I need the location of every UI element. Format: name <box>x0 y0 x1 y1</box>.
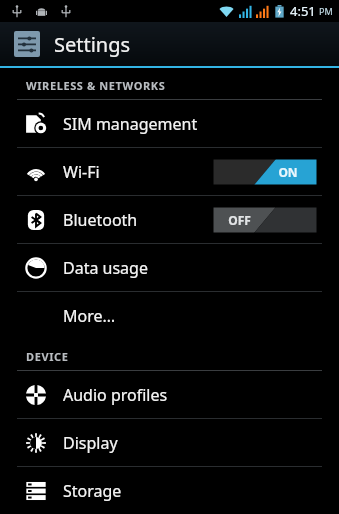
staticText: Wi-Fi <box>63 161 100 183</box>
staticText: Bluetooth <box>63 209 138 231</box>
staticText: More… <box>63 305 116 327</box>
button[interactable]: Display <box>0 419 339 466</box>
button[interactable]: Wi-Fi <box>0 148 339 195</box>
staticText: ON <box>278 164 298 180</box>
button[interactable]: Settings <box>0 22 339 66</box>
button[interactable]: SIM management <box>0 100 339 147</box>
staticText: Audio profiles <box>63 384 168 406</box>
staticText: 4:51 <box>290 2 316 20</box>
staticText: WIRELESS & NETWORKS <box>26 78 166 93</box>
staticText: OFF <box>228 212 251 228</box>
staticText: PM <box>319 5 333 17</box>
button[interactable]: Storage <box>0 467 339 514</box>
button[interactable]: Audio profiles <box>0 371 339 418</box>
staticText: SIM management <box>63 113 198 135</box>
button[interactable]: More… <box>0 292 339 339</box>
button[interactable]: Switch off <box>213 207 317 233</box>
button[interactable]: Switch on <box>213 159 317 185</box>
staticText: Data usage <box>63 257 148 279</box>
staticText: Settings <box>54 31 131 58</box>
button[interactable]: Bluetooth <box>0 196 339 243</box>
staticText: DEVICE <box>26 349 69 364</box>
staticText: Display <box>63 432 118 454</box>
staticText: Storage <box>63 480 122 502</box>
button[interactable]: Data usage <box>0 244 339 291</box>
